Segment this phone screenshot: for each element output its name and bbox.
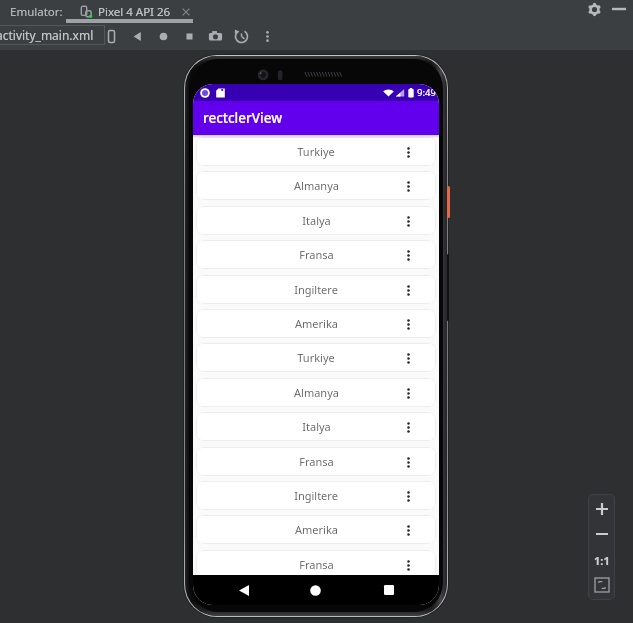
button[interactable]: More options — [400, 213, 416, 229]
button[interactable]: Rotate — [229, 24, 253, 48]
button[interactable]: Fransa — [196, 447, 436, 476]
button[interactable]: More options — [400, 488, 416, 504]
button[interactable]: More options — [400, 385, 416, 401]
button[interactable]: Home — [295, 575, 336, 605]
staticText: rectclerView — [203, 109, 283, 127]
button[interactable]: Turkiye — [196, 343, 436, 372]
button[interactable]: Amerika — [196, 515, 436, 544]
button[interactable]: More options — [400, 454, 416, 470]
staticText: Amerika — [295, 316, 338, 331]
button[interactable]: Zoom out — [591, 523, 613, 545]
button[interactable]: Almanya — [196, 378, 436, 407]
button[interactable]: Home — [151, 24, 175, 48]
staticText: Fransa — [299, 557, 334, 572]
button[interactable]: Screenshot — [203, 24, 227, 48]
button[interactable]: Turkiye — [196, 137, 436, 166]
button[interactable]: More — [255, 24, 279, 48]
staticText: Ingiltere — [294, 488, 338, 503]
button[interactable]: Back — [125, 24, 149, 48]
button[interactable]: Recents — [177, 24, 201, 48]
staticText: Pixel 4 API 26 — [98, 4, 171, 20]
button[interactable]: Close tab — [180, 6, 192, 18]
staticText: Emulator: — [10, 4, 63, 20]
button[interactable]: Back — [223, 575, 264, 605]
staticText: Turkiye — [297, 144, 335, 159]
staticText: Italya — [302, 419, 331, 434]
button[interactable]: Rotate device — [99, 24, 123, 48]
button[interactable]: Fransa — [196, 240, 436, 269]
button[interactable]: Recent apps — [368, 575, 409, 605]
button[interactable]: Fransa — [196, 550, 436, 579]
button[interactable]: Actual size — [591, 549, 613, 571]
staticText: Almanya — [294, 385, 339, 400]
staticText: Turkiye — [297, 350, 335, 365]
button[interactable]: More options — [400, 522, 416, 538]
staticText: 9:49 — [417, 86, 436, 99]
button[interactable]: More options — [400, 282, 416, 298]
button[interactable]: More options — [400, 178, 416, 194]
button[interactable]: Almanya — [196, 171, 436, 200]
staticText: Amerika — [295, 522, 338, 537]
button[interactable]: Italya — [196, 412, 436, 441]
button[interactable]: activity_main.xml — [0, 25, 105, 45]
button[interactable]: Settings — [585, 0, 603, 18]
staticText: 1:1 — [594, 553, 610, 568]
staticText: Ingiltere — [294, 282, 338, 297]
button[interactable]: Fit to screen — [591, 574, 613, 596]
button[interactable]: More options — [400, 350, 416, 366]
staticText: Italya — [302, 213, 331, 228]
button[interactable]: More options — [400, 419, 416, 435]
staticText: Fransa — [299, 247, 334, 262]
staticText: Fransa — [299, 454, 334, 469]
staticText: activity_main.xml — [0, 27, 94, 43]
staticText: Almanya — [294, 178, 339, 193]
button[interactable]: More options — [400, 247, 416, 263]
button[interactable]: Italya — [196, 206, 436, 235]
button[interactable]: Ingiltere — [196, 275, 436, 304]
button[interactable]: Amerika — [196, 309, 436, 338]
button[interactable]: Minimize — [610, 0, 628, 18]
button[interactable]: More options — [400, 144, 416, 160]
button[interactable]: More options — [400, 316, 416, 332]
button[interactable]: Ingiltere — [196, 481, 436, 510]
button[interactable]: More options — [400, 557, 416, 573]
button[interactable]: Zoom in — [591, 498, 613, 520]
